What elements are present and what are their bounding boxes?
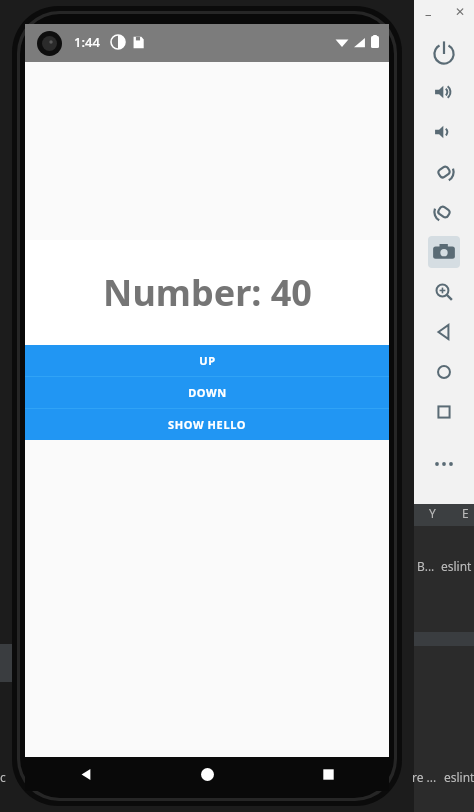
button[interactable]: Power xyxy=(428,36,460,68)
button[interactable]: DOWN xyxy=(25,377,389,408)
button[interactable]: Home xyxy=(147,757,268,791)
button[interactable]: SHOW HELLO xyxy=(25,409,389,440)
button[interactable]: Volume down xyxy=(428,116,460,148)
staticText: UP xyxy=(199,353,216,368)
button[interactable]: Close xyxy=(451,3,469,21)
staticText: E xyxy=(462,505,469,521)
staticText: eslint xyxy=(444,769,474,785)
staticText: re ... xyxy=(412,769,437,785)
button[interactable]: Home xyxy=(428,356,460,388)
staticText: Y xyxy=(429,505,436,521)
button[interactable]: Zoom xyxy=(428,276,460,308)
button[interactable]: Rotate right xyxy=(428,196,460,228)
staticText: 1:44 xyxy=(74,33,100,51)
button[interactable]: UP xyxy=(25,345,389,376)
button[interactable]: Take screenshot xyxy=(428,236,460,268)
staticText: ✕ xyxy=(455,5,466,19)
button[interactable]: Recent apps xyxy=(268,757,389,791)
button[interactable]: Overview xyxy=(428,396,460,428)
staticText: DOWN xyxy=(188,385,227,400)
staticText: B... xyxy=(417,558,435,574)
button[interactable]: Back xyxy=(428,316,460,348)
staticText: – xyxy=(425,5,432,23)
staticText: c xyxy=(0,769,6,785)
staticText: eslint xyxy=(441,558,472,574)
button[interactable]: Back xyxy=(25,757,147,791)
button[interactable]: Volume up xyxy=(428,76,460,108)
button[interactable]: More options xyxy=(428,448,460,480)
staticText: Number: 40 xyxy=(103,268,312,317)
button[interactable]: Rotate left xyxy=(428,156,460,188)
staticText: SHOW HELLO xyxy=(168,417,246,432)
